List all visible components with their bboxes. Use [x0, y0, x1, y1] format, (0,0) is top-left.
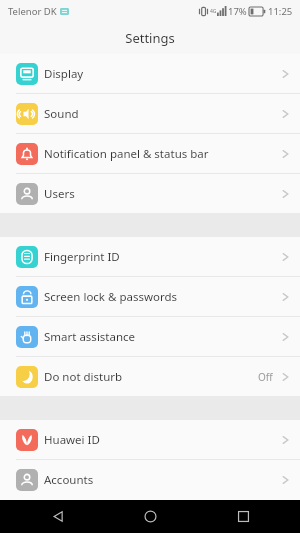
- button[interactable]: Users: [0, 174, 300, 213]
- staticText: Users: [44, 186, 281, 202]
- button[interactable]: Back: [23, 500, 93, 533]
- staticText: Notification panel & status bar: [44, 146, 281, 162]
- staticText: Telenor DK: [8, 5, 57, 18]
- staticText: Screen lock & passwords: [44, 289, 281, 305]
- staticText: Settings: [125, 29, 175, 47]
- button[interactable]: Do not disturb: [0, 357, 300, 396]
- button[interactable]: Recent apps: [208, 500, 278, 533]
- staticText: 17%: [228, 5, 247, 18]
- staticText: Do not disturb: [44, 369, 258, 385]
- staticText: Fingerprint ID: [44, 249, 281, 265]
- staticText: 4G: [210, 8, 217, 15]
- button[interactable]: Fingerprint ID: [0, 237, 300, 276]
- staticText: Smart assistance: [44, 329, 281, 345]
- button[interactable]: Display: [0, 54, 300, 93]
- button[interactable]: Home: [115, 500, 185, 533]
- staticText: Sound: [44, 106, 281, 122]
- button[interactable]: Smart assistance: [0, 317, 300, 356]
- staticText: 11:25: [268, 5, 293, 18]
- button[interactable]: Screen lock & passwords: [0, 277, 300, 316]
- button[interactable]: Sound: [0, 94, 300, 133]
- staticText: Huawei ID: [44, 432, 281, 448]
- button[interactable]: Notification panel & status bar: [0, 134, 300, 173]
- button[interactable]: Accounts: [0, 460, 300, 499]
- staticText: Accounts: [44, 472, 281, 488]
- button[interactable]: Huawei ID: [0, 420, 300, 459]
- staticText: Off: [258, 370, 273, 384]
- staticText: Display: [44, 66, 281, 82]
